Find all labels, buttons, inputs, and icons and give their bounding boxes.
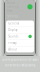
staticText: Lorem ipsum dolor sit amet [1, 58, 38, 61]
button[interactable]: Display [6, 27, 34, 33]
staticText: Sounds [8, 35, 18, 38]
staticText: Settings [7, 14, 18, 18]
button[interactable]: Privacy [6, 40, 34, 46]
staticText: General [8, 22, 19, 25]
button[interactable]: Sounds [6, 33, 34, 39]
button[interactable]: General [6, 20, 34, 27]
staticText: Display [8, 28, 17, 32]
staticText: Privacy [8, 41, 16, 45]
staticText: consectetur adipiscing [4, 63, 35, 67]
button[interactable]: Profile [27, 4, 33, 9]
staticText: About [8, 48, 17, 51]
button[interactable]: About [6, 46, 34, 52]
